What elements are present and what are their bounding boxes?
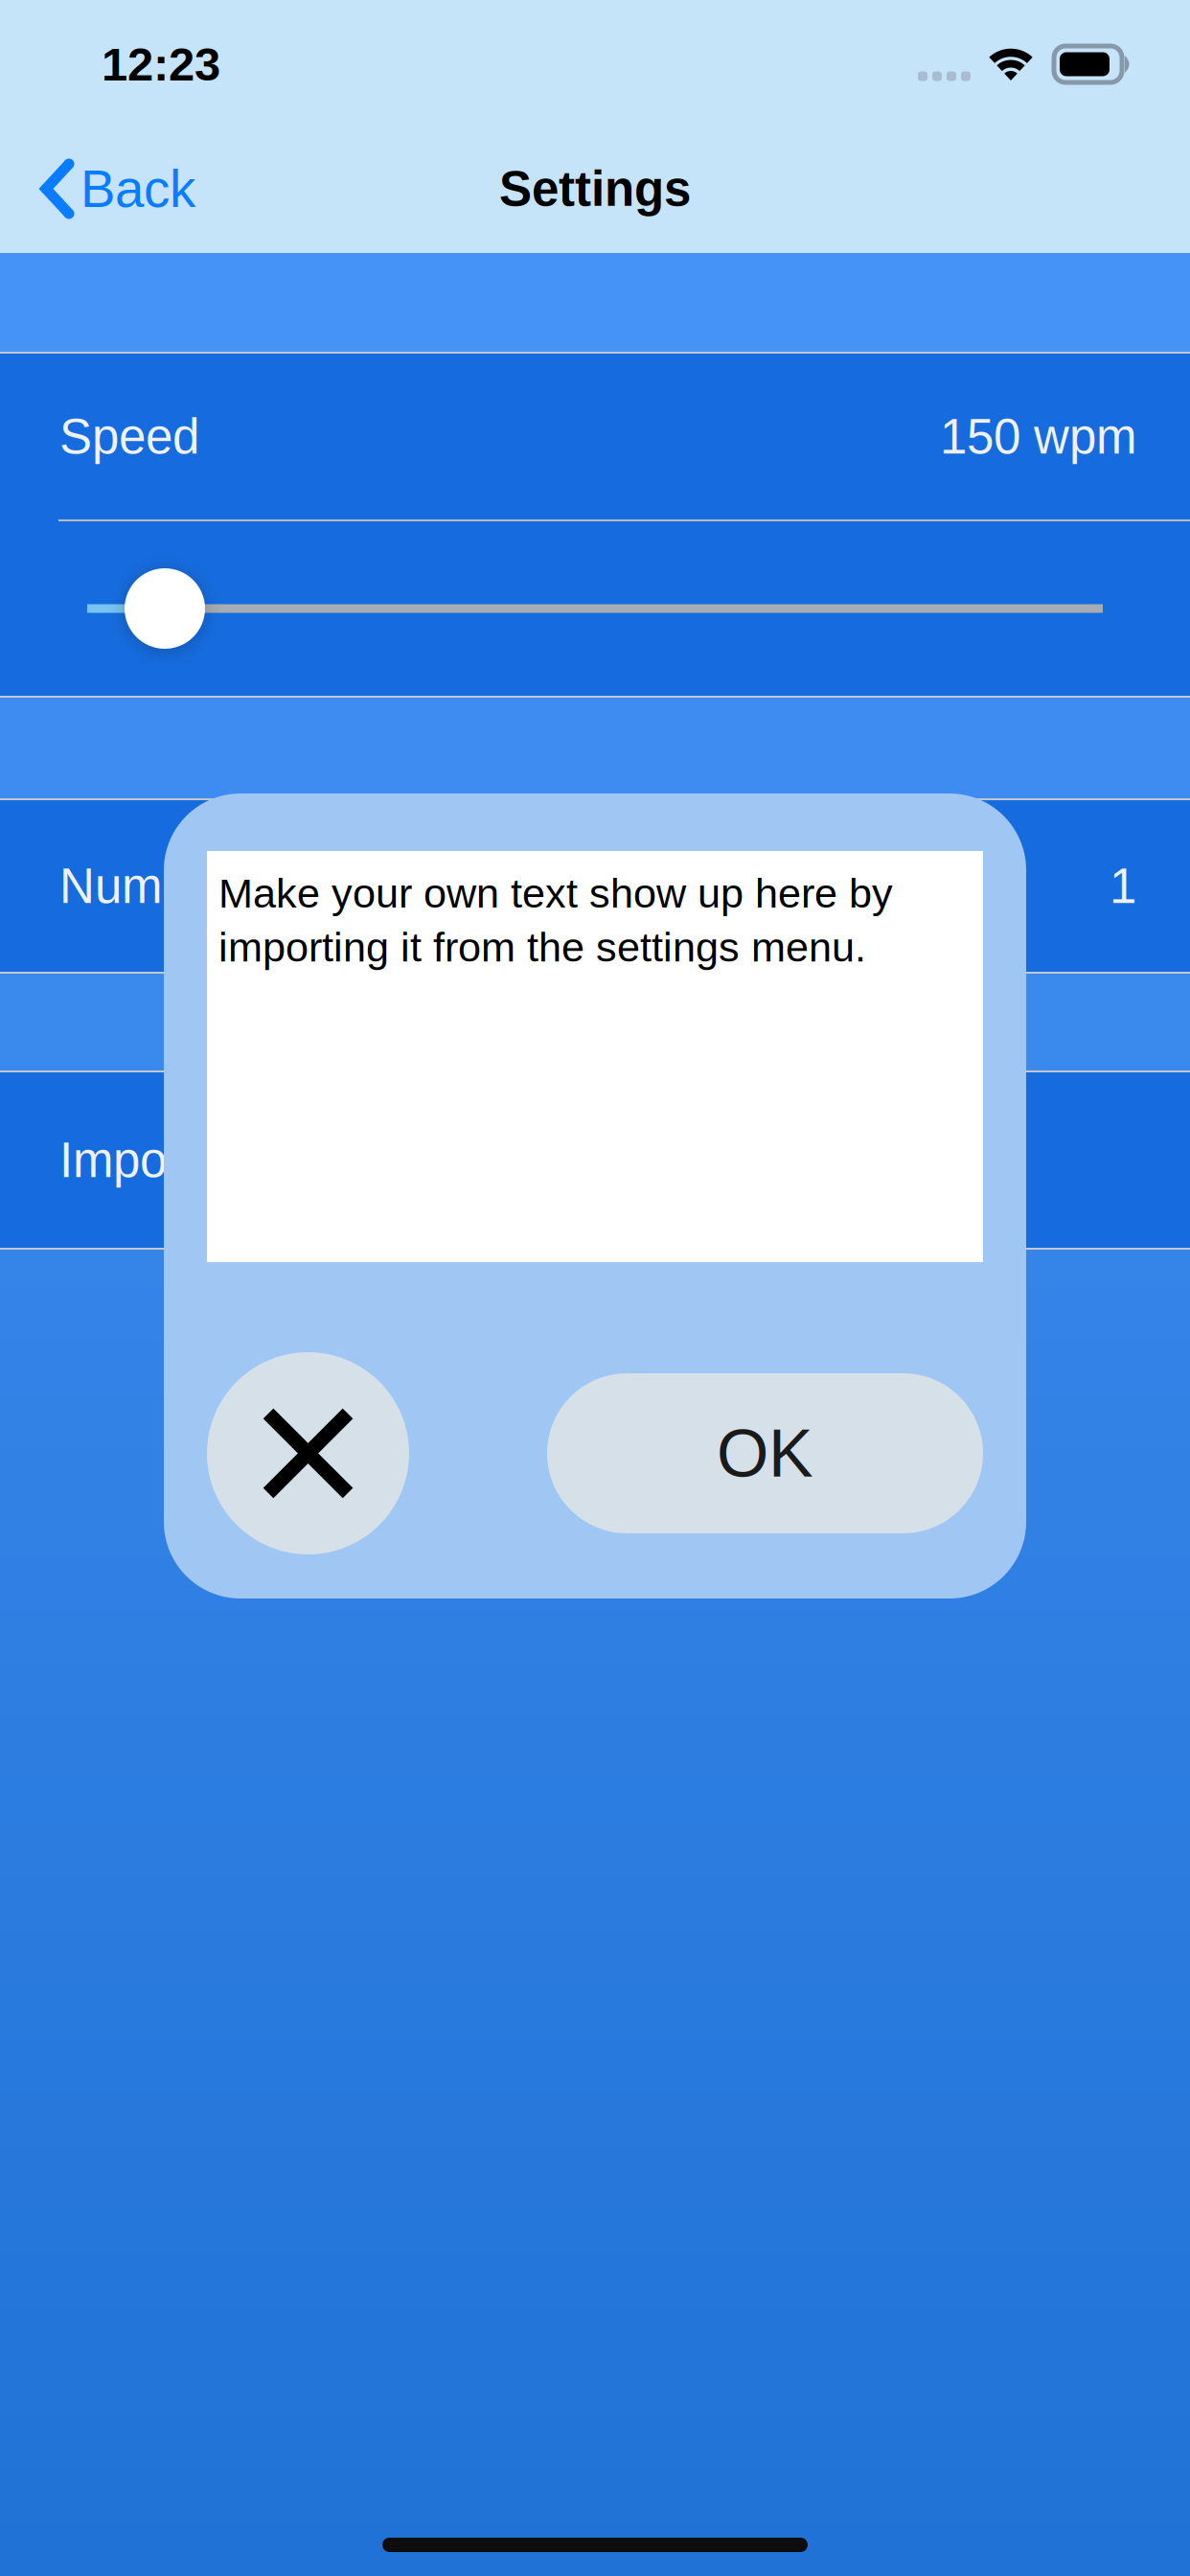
button[interactable]: Close bbox=[207, 1352, 409, 1554]
staticText: Speed bbox=[59, 409, 199, 464]
staticText: 1 bbox=[1110, 859, 1136, 913]
staticText: Make your own text show up here by impor… bbox=[218, 870, 893, 970]
staticText: Number of words bbox=[59, 859, 429, 913]
staticText: Back bbox=[80, 160, 195, 218]
button[interactable]: Back bbox=[0, 142, 195, 236]
staticText: 150 wpm bbox=[940, 409, 1136, 464]
staticText: 12:23 bbox=[102, 38, 220, 90]
staticText: Import text bbox=[59, 1133, 288, 1187]
button[interactable]: OK bbox=[547, 1373, 983, 1533]
staticText: Settings bbox=[499, 161, 691, 216]
staticText: OK bbox=[717, 1416, 813, 1491]
